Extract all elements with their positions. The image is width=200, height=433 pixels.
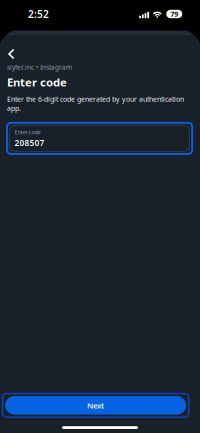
staticText: slyfer.inc • Instagram	[7, 63, 72, 71]
staticText: 208507	[14, 137, 44, 148]
staticText: 2:52	[28, 7, 49, 21]
staticText: Enter code	[14, 128, 40, 136]
button[interactable]: Next	[0, 393, 189, 417]
staticText: Enter code	[7, 74, 67, 89]
button[interactable]: Enter code	[0, 123, 192, 154]
button[interactable]: Back	[0, 30, 30, 69]
staticText: Next	[87, 400, 104, 410]
staticText: 79	[170, 9, 178, 19]
staticText: Enter the 6-digit code generated by your…	[7, 94, 184, 113]
